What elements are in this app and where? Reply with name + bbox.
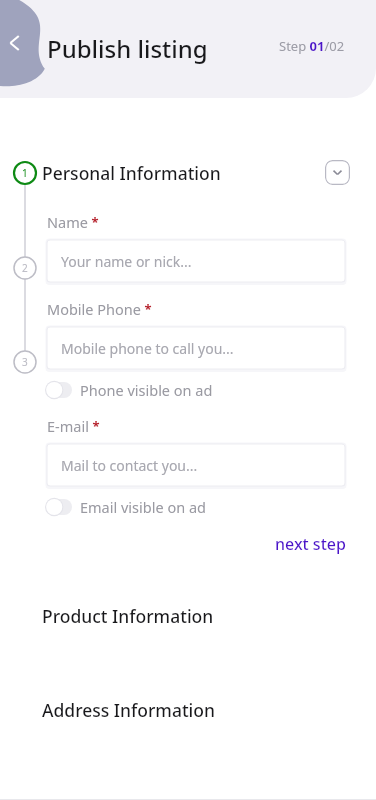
button[interactable]: Phone visible on ad	[45, 375, 213, 405]
staticText: Product Information	[42, 604, 214, 628]
button[interactable]: Mobile phone to call you...	[47, 327, 345, 369]
button[interactable]: Mail to contact you...	[47, 444, 345, 486]
button[interactable]: Your name or nick...	[47, 240, 345, 282]
staticText: *	[141, 300, 152, 318]
staticText: Publish listing	[47, 32, 208, 65]
staticText: Mobile Phone	[47, 299, 141, 319]
button[interactable]: Back	[0, 0, 64, 112]
staticText: Mail to contact you...	[61, 456, 198, 475]
staticText: Phone visible on ad	[80, 380, 213, 400]
staticText: next step	[275, 533, 346, 555]
staticText: Step 01/02	[279, 37, 345, 55]
staticText: 2	[22, 261, 28, 275]
staticText: Name	[47, 212, 88, 232]
staticText: *	[88, 213, 99, 231]
staticText: Email visible on ad	[80, 497, 206, 517]
button[interactable]: Personal Information	[0, 157, 376, 188]
staticText: Mobile phone to call you...	[61, 339, 234, 358]
button[interactable]: Address Information	[0, 695, 376, 725]
button[interactable]: Collapse Personal Information	[325, 160, 350, 185]
button[interactable]: next step	[273, 531, 348, 557]
button[interactable]: Step 01/02	[279, 37, 345, 55]
button[interactable]: Product Information	[0, 601, 376, 631]
staticText: Address Information	[42, 698, 216, 722]
staticText: Personal Information	[42, 161, 221, 185]
button[interactable]: Email visible on ad	[45, 492, 206, 522]
staticText: Your name or nick...	[61, 252, 192, 271]
staticText: 3	[22, 355, 28, 369]
staticText: *	[89, 417, 100, 435]
staticText: E-mail	[47, 416, 89, 436]
staticText: 1	[22, 166, 28, 180]
